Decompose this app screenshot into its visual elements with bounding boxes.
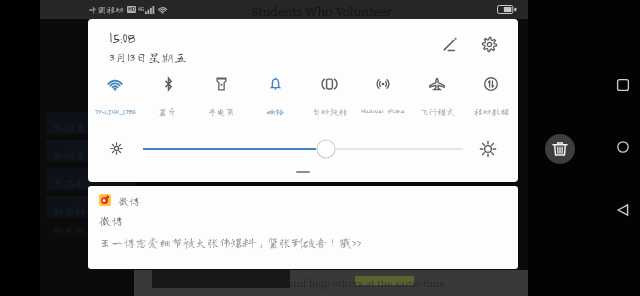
staticText: 物区院: [53, 224, 86, 235]
staticText: 3月13日星期五: [109, 51, 187, 64]
button[interactable]: Huawei Share: [356, 74, 410, 136]
staticText: 孙子轩: [53, 205, 86, 216]
staticText: 陶祺东: [53, 149, 86, 160]
staticText: 王一博恋爱细节被大张伟爆料，紧张到破音！戳>>: [99, 236, 362, 248]
staticText: Huawei Share: [361, 107, 405, 115]
staticText: 15:08: [109, 28, 135, 46]
button[interactable]: Delete: [545, 134, 575, 164]
staticText: 响铃: [266, 107, 285, 116]
staticText: 飞行模式: [419, 107, 456, 116]
staticText: TP-LINK_1786: [94, 107, 136, 116]
staticText: 蓝牙: [158, 107, 177, 116]
staticText: 手电筒: [207, 107, 235, 116]
button[interactable]: Back: [605, 192, 640, 228]
staticText: 微博: [118, 195, 140, 206]
button[interactable]: Recent apps: [605, 67, 640, 103]
button[interactable]: 自动旋转: [302, 74, 356, 136]
staticText: 中国移动: [88, 5, 125, 14]
button[interactable]: Settings: [475, 30, 503, 58]
button[interactable]: 响铃: [248, 74, 302, 136]
button[interactable]: 飞行模式: [410, 74, 464, 136]
button[interactable]: Home: [605, 129, 640, 165]
button[interactable]: 微博: [88, 186, 518, 269]
staticText: 4G: [138, 6, 145, 13]
staticText: 移动数据: [473, 107, 510, 116]
staticText: 微博: [99, 214, 124, 226]
button[interactable]: Edit quick settings: [436, 30, 464, 58]
staticText: Students Who Volunteer: [252, 2, 392, 19]
staticText: and help others at the same time.: [288, 275, 448, 289]
staticText: 陶祺东: [53, 121, 86, 132]
staticText: HD: [128, 6, 136, 13]
staticText: 赵铭永: [53, 177, 86, 188]
button[interactable]: 蓝牙: [141, 74, 194, 136]
button[interactable]: 手电筒: [194, 74, 248, 136]
staticText: 自动旋转: [311, 107, 348, 116]
button[interactable]: TP-LINK_1786: [88, 74, 141, 136]
button[interactable]: [138, 138, 468, 160]
button[interactable]: 移动数据: [464, 74, 518, 136]
